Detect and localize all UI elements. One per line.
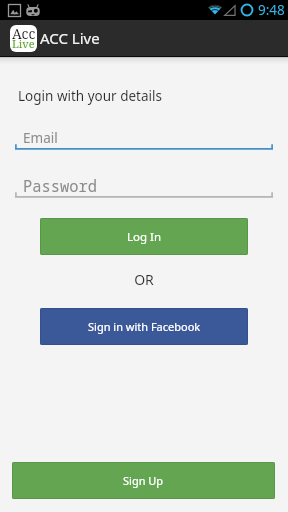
other: System notification <box>26 5 40 16</box>
staticText: Sign in with Facebook <box>88 319 201 334</box>
staticText: OR <box>0 270 288 289</box>
staticText: 9:48 <box>258 1 285 19</box>
button[interactable]: Email <box>15 129 273 151</box>
button[interactable]: Sign in with Facebook <box>40 308 248 345</box>
button[interactable]: Sign Up <box>12 462 275 499</box>
button[interactable]: Password <box>15 177 273 199</box>
staticText: Password <box>23 176 97 197</box>
staticText: Email <box>23 129 58 147</box>
staticText: Sign Up <box>123 473 164 488</box>
button[interactable]: ACC Live logo <box>10 25 37 52</box>
staticText: Log In <box>127 229 162 245</box>
staticText: Acc <box>12 25 36 43</box>
staticText: ACC Live <box>40 28 100 48</box>
other: Screenshot notification <box>8 4 21 17</box>
staticText: Login with your details <box>18 87 162 105</box>
button[interactable]: Log In <box>40 218 248 255</box>
staticText: Live <box>12 36 35 51</box>
